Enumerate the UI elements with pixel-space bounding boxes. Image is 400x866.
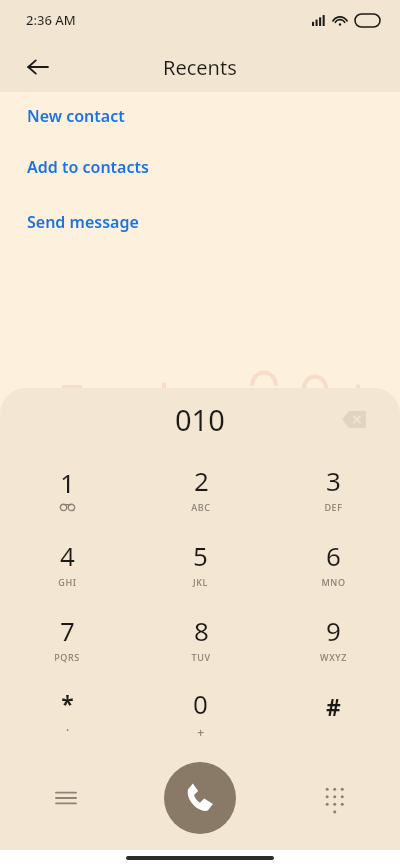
staticText: ABC	[191, 501, 211, 513]
staticText: #	[326, 691, 341, 722]
staticText: 5	[193, 538, 208, 573]
staticText: DEF	[324, 501, 343, 513]
staticText: 2	[194, 463, 209, 498]
button[interactable]: 0	[134, 675, 267, 750]
staticText: New contact	[27, 105, 125, 127]
staticText: 4	[60, 538, 75, 573]
button[interactable]: #	[267, 675, 400, 750]
staticText: JKL	[193, 576, 208, 588]
button[interactable]: Call log	[42, 774, 90, 822]
staticText: PQRS	[54, 651, 80, 663]
staticText: MNO	[321, 576, 346, 588]
staticText: Send message	[27, 211, 139, 233]
staticText: 8	[194, 613, 209, 648]
staticText: Add to contacts	[27, 156, 149, 178]
button[interactable]: Back	[14, 43, 62, 91]
staticText: 3	[326, 463, 341, 498]
staticText: TUV	[191, 651, 211, 663]
staticText: GHI	[58, 576, 77, 588]
staticText: 1	[60, 465, 75, 500]
staticText: 0	[193, 686, 208, 721]
staticText: 2:36 AM	[26, 11, 76, 29]
button[interactable]: Add to contacts	[0, 140, 400, 194]
staticText: 7	[60, 613, 75, 648]
staticText: 6	[326, 538, 341, 573]
button[interactable]: 8	[134, 600, 267, 675]
staticText: 9	[326, 613, 341, 648]
button[interactable]: Keypad	[310, 774, 358, 822]
button[interactable]: Call	[164, 762, 236, 834]
staticText: *	[61, 688, 74, 719]
staticText: Recents	[163, 54, 237, 81]
staticText: +	[197, 724, 205, 740]
button[interactable]: 3	[267, 450, 400, 525]
button[interactable]: 2	[134, 450, 267, 525]
button[interactable]: Send message	[0, 194, 400, 249]
button[interactable]: New contact	[0, 92, 400, 140]
staticText: WXYZ	[320, 651, 347, 663]
button[interactable]: 1	[0, 450, 134, 525]
button[interactable]: 7	[0, 600, 134, 675]
button[interactable]: 4	[0, 525, 134, 600]
staticText: ·	[66, 722, 70, 738]
button[interactable]: *	[0, 675, 134, 750]
button[interactable]: 5	[134, 525, 267, 600]
button[interactable]: 9	[267, 600, 400, 675]
button[interactable]: 6	[267, 525, 400, 600]
staticText: 010	[175, 400, 225, 439]
button[interactable]: Backspace	[332, 397, 376, 441]
